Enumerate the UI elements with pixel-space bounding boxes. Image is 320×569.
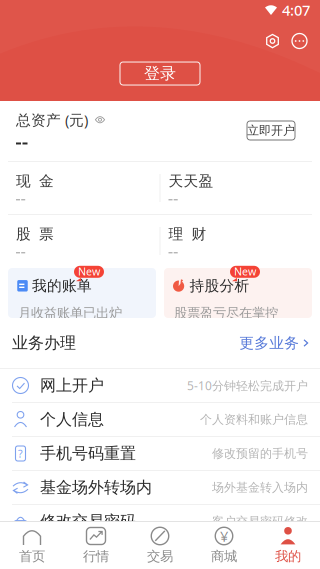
- staticText: 行情: [83, 548, 109, 564]
- staticText: 业务办理: [12, 333, 76, 353]
- staticText: 股 票: [16, 225, 54, 243]
- button[interactable]: 基金场外转场内: [0, 471, 320, 505]
- staticText: 商城: [211, 548, 237, 564]
- staticText: 手机号码重置: [40, 444, 136, 463]
- button[interactable]: 持股分析: [164, 268, 312, 318]
- staticText: 理 财: [168, 225, 206, 243]
- staticText: 网上开户: [40, 376, 104, 395]
- staticText: 场外基金转入场内: [212, 480, 308, 495]
- button[interactable]: 我的: [256, 522, 320, 569]
- staticText: 客户交易密码修改: [212, 514, 308, 529]
- button[interactable]: 设置: [262, 30, 283, 51]
- staticText: 首页: [19, 548, 45, 564]
- button[interactable]: ¥: [192, 522, 256, 569]
- staticText: 立即开户: [247, 123, 295, 138]
- staticText: 基金场外转场内: [40, 478, 152, 497]
- button[interactable]: 个人信息: [0, 403, 320, 437]
- staticText: 登录: [144, 64, 176, 83]
- staticText: New: [234, 264, 256, 278]
- button[interactable]: 修改交易密码: [0, 505, 320, 539]
- staticText: 修改交易密码: [40, 512, 136, 531]
- button[interactable]: 消息: [289, 30, 310, 51]
- staticText: 我的账单: [32, 277, 92, 295]
- staticText: New: [78, 264, 100, 278]
- button[interactable]: 股 票: [8, 215, 159, 267]
- staticText: 总资产 (元): [16, 110, 88, 129]
- staticText: 持股分析: [189, 277, 249, 295]
- button[interactable]: 网上开户: [0, 369, 320, 403]
- staticText: 现 金: [16, 172, 54, 190]
- button[interactable]: 我的账单: [8, 268, 156, 318]
- staticText: 4:07: [282, 0, 310, 20]
- staticText: 更多业务: [239, 334, 299, 352]
- staticText: 股票盈亏尽在掌控: [174, 305, 278, 321]
- button[interactable]: 交易: [128, 522, 192, 569]
- button[interactable]: 登录: [120, 62, 200, 85]
- staticText: 个人资料和账户信息: [200, 412, 308, 427]
- button[interactable]: 首页: [0, 522, 64, 569]
- button[interactable]: 天天盈: [160, 162, 312, 214]
- button[interactable]: 立即开户: [247, 121, 295, 140]
- staticText: 5-10分钟轻松完成开户: [187, 377, 308, 393]
- button[interactable]: 现 金: [8, 162, 159, 214]
- staticText: 个人信息: [40, 410, 104, 429]
- staticText: 天天盈: [168, 172, 213, 190]
- button[interactable]: 行情: [64, 522, 128, 569]
- staticText: 交易: [147, 548, 173, 564]
- staticText: 修改预留的手机号: [212, 446, 308, 461]
- staticText: ¥: [220, 526, 228, 546]
- button[interactable]: 更多业务: [239, 334, 308, 352]
- staticText: 我的: [275, 548, 301, 564]
- staticText: 月收益账单已出炉: [18, 305, 122, 321]
- staticText: ?: [18, 446, 23, 461]
- button[interactable]: ?: [0, 437, 320, 471]
- button[interactable]: 理 财: [160, 215, 312, 267]
